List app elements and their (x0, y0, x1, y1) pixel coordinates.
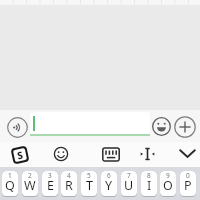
button[interactable] (7, 117, 28, 138)
button[interactable]: 3 (42, 171, 58, 197)
staticText: O (163, 177, 173, 194)
button[interactable]: 7 (121, 171, 137, 197)
button[interactable]: 9 (160, 171, 176, 197)
button[interactable]: 5 (81, 171, 97, 197)
staticText: R (65, 177, 73, 194)
button[interactable] (102, 147, 120, 162)
staticText: 0 (186, 171, 190, 180)
staticText: 7 (127, 171, 131, 180)
staticText: P (184, 177, 192, 194)
button[interactable]: 6 (101, 171, 117, 197)
staticText: 1 (8, 171, 12, 180)
staticText: S (16, 147, 24, 162)
button[interactable]: 8 (141, 171, 157, 197)
button[interactable] (53, 146, 69, 162)
button[interactable]: 1 (2, 171, 18, 197)
staticText: U (124, 177, 134, 194)
staticText: 9 (166, 171, 170, 180)
staticText: Q (5, 177, 15, 194)
staticText: W (24, 177, 36, 194)
staticText: 5 (87, 171, 91, 180)
button[interactable] (30, 112, 150, 135)
staticText: 2 (28, 171, 32, 180)
staticText: 3 (48, 171, 52, 180)
button[interactable]: 2 (22, 171, 38, 197)
staticText: E (47, 177, 54, 194)
staticText: 4 (67, 171, 71, 180)
button[interactable] (179, 147, 196, 160)
button[interactable] (174, 116, 196, 138)
button[interactable] (140, 147, 155, 161)
button[interactable]: S (10, 145, 29, 164)
button[interactable]: 0 (180, 171, 196, 197)
button[interactable]: 4 (61, 171, 77, 197)
button[interactable] (152, 117, 171, 136)
staticText: T (86, 177, 93, 194)
staticText: 6 (107, 171, 111, 180)
staticText: Y (105, 177, 113, 194)
staticText: I (147, 177, 152, 194)
staticText: 8 (147, 171, 151, 180)
